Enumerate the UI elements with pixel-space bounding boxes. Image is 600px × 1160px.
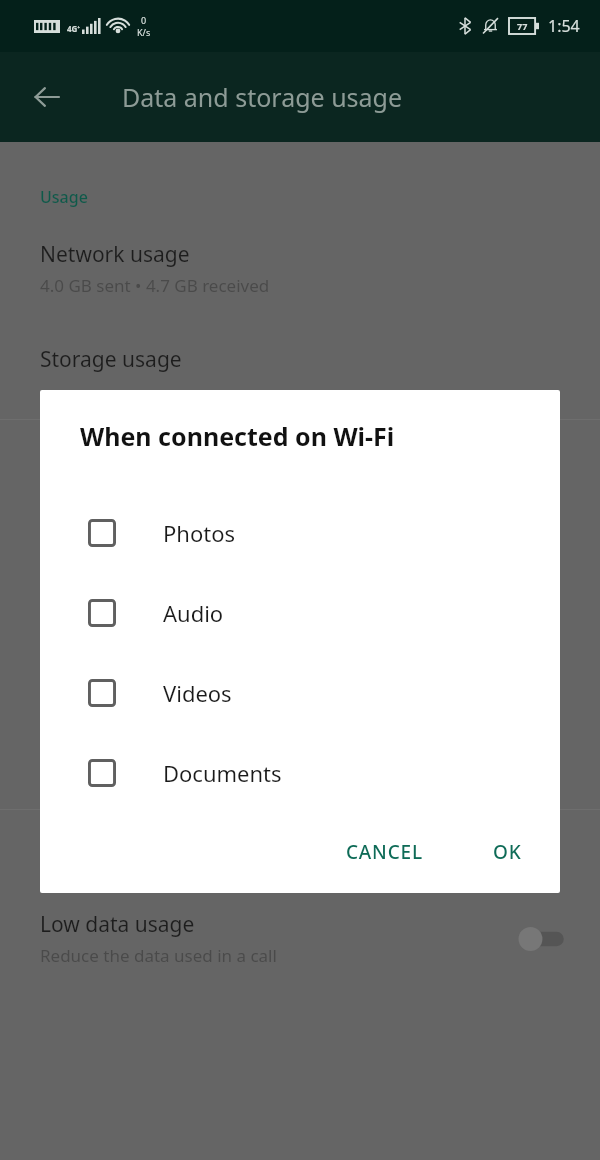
button[interactable]: When connected on Wi-Fi (0, 611, 600, 668)
button[interactable]: When roaming (0, 708, 600, 765)
staticText: Documents (163, 758, 282, 788)
button[interactable]: OK (479, 829, 536, 875)
staticText: Audio (163, 598, 224, 628)
button[interactable]: Back (20, 70, 74, 124)
staticText: 1:54 (548, 15, 580, 37)
staticText: When connected on Wi-Fi (80, 419, 395, 453)
button[interactable]: Photos (40, 493, 560, 573)
staticText: 77 (517, 20, 528, 32)
button[interactable]: Low data usage (0, 910, 600, 967)
staticText: 0 (141, 14, 147, 26)
staticText: Storage usage (40, 345, 182, 374)
button[interactable]: Videos (40, 653, 560, 733)
staticText: Low data usage (40, 910, 195, 939)
button[interactable]: Documents (40, 733, 560, 813)
button[interactable]: When using mobile data (0, 514, 600, 571)
staticText: K/s (137, 26, 151, 38)
staticText: CANCEL (346, 839, 423, 865)
staticText: 4.0 GB sent • 4.7 GB received (40, 274, 270, 297)
button[interactable]: CANCEL (332, 829, 437, 875)
staticText: When using mobile data (40, 514, 281, 543)
staticText: Reduce the data used in a call (40, 944, 277, 967)
staticText: OK (493, 839, 522, 865)
staticText: Videos (163, 678, 232, 708)
button[interactable]: Network usage (0, 240, 600, 297)
button[interactable]: Storage usage (0, 345, 600, 374)
button[interactable]: Audio (40, 573, 560, 653)
staticText: When connected on Wi-Fi (40, 611, 291, 640)
staticText: No media (40, 742, 118, 765)
staticText: Network usage (40, 240, 190, 269)
staticText: Usage (40, 186, 88, 208)
staticText: Data and storage usage (122, 80, 403, 114)
staticText: 4G⁺ (67, 23, 81, 34)
staticText: Photos (163, 518, 236, 548)
